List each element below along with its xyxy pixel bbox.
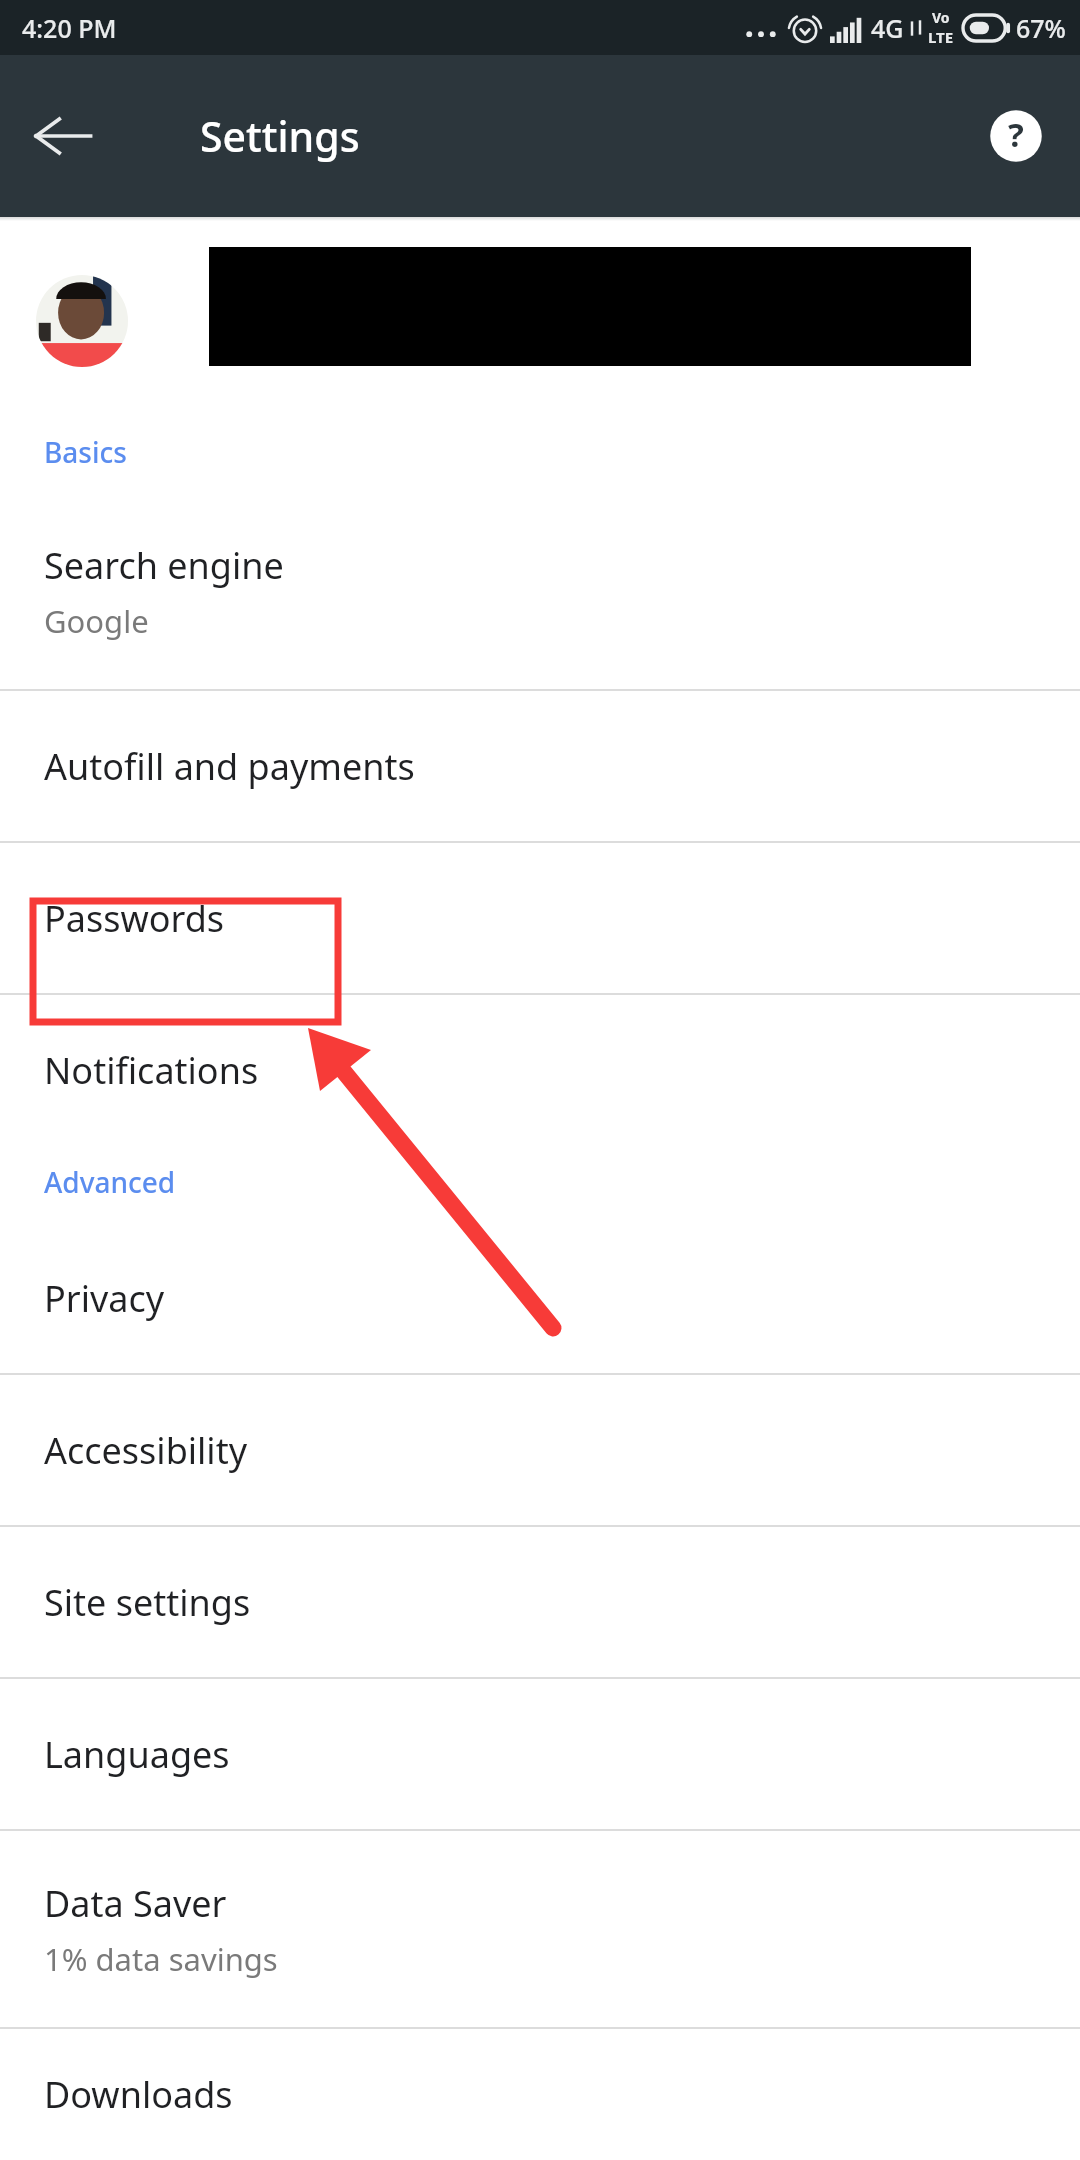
button[interactable]: Site settings [0,1527,1080,1677]
button[interactable]: Accessibility [0,1375,1080,1525]
staticText: Site settings [44,1578,251,1627]
staticText: Settings [200,108,360,164]
staticText: Search engine [44,541,284,590]
button[interactable]: Privacy [0,1223,1080,1373]
staticText: Notifications [44,1046,259,1095]
staticText: Google [44,600,149,642]
button[interactable]: Notifications [0,995,1080,1145]
button[interactable]: Back [28,102,96,170]
button[interactable]: Languages [0,1679,1080,1829]
staticText: 1% data savings [44,1938,278,1980]
staticText: 67% [1016,11,1066,45]
staticText: Privacy [44,1274,165,1323]
staticText: Autofill and payments [44,742,415,791]
button[interactable]: Search engine [0,493,1080,689]
staticText: Advanced [44,1163,176,1201]
staticText: Languages [44,1730,230,1779]
staticText: 4G [871,11,904,45]
button[interactable] [0,221,1080,421]
button[interactable]: Passwords [0,843,1080,993]
button[interactable]: Data Saver [0,1831,1080,2027]
staticText: Vo [932,8,950,27]
staticText: Passwords [44,894,225,943]
staticText: ? [1008,112,1024,157]
staticText: Accessibility [44,1426,248,1475]
staticText: Basics [44,433,127,471]
staticText: Data Saver [44,1879,227,1928]
button[interactable]: Downloads [0,2029,1080,2160]
staticText: LTE [928,27,954,47]
button[interactable]: Help [988,108,1044,164]
staticText: 4:20 PM [22,11,117,45]
button[interactable]: Autofill and payments [0,691,1080,841]
staticText: Downloads [44,2070,233,2119]
